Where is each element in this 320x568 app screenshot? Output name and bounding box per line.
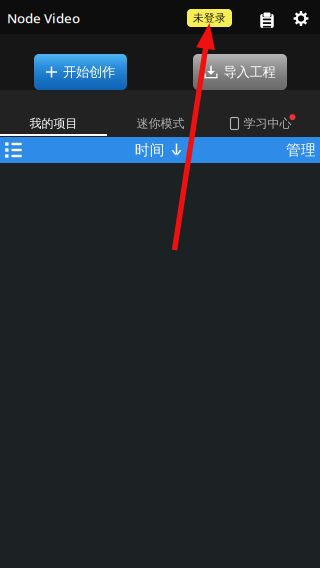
staticText: 开始创作 — [63, 64, 115, 80]
staticText: 迷你模式 — [136, 116, 184, 131]
button[interactable]: Settings — [289, 0, 313, 34]
staticText: 时间 — [135, 141, 165, 159]
button[interactable]: 时间 — [137, 137, 183, 163]
button[interactable]: 导入工程 — [193, 54, 287, 90]
button[interactable]: Layout — [0, 137, 38, 163]
button[interactable]: 开始创作 — [34, 54, 127, 90]
staticText: 导入工程 — [223, 64, 275, 80]
button[interactable]: 未登录 — [187, 8, 232, 26]
button[interactable]: 我的项目 — [0, 91, 107, 136]
button[interactable]: 管理 — [286, 137, 320, 163]
staticText: 管理 — [286, 141, 316, 159]
staticText: 我的项目 — [29, 116, 77, 131]
button[interactable]: 学习中心 — [214, 91, 320, 136]
staticText: 学习中心 — [243, 116, 291, 131]
staticText: 未登录 — [193, 11, 226, 24]
staticText: Node Video — [7, 9, 80, 27]
button[interactable]: Projects — [255, 0, 279, 34]
button[interactable]: 迷你模式 — [107, 91, 214, 136]
